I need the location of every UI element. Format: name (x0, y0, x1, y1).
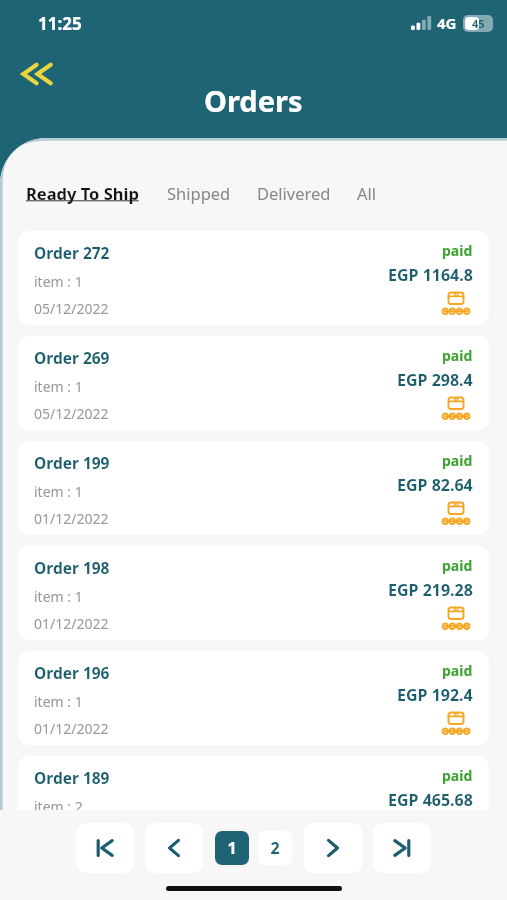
button[interactable]: Order 189 (18, 756, 489, 850)
staticText: Order 199 (34, 452, 110, 473)
button[interactable]: Previous page (145, 823, 203, 873)
button[interactable]: First page (76, 823, 134, 873)
button[interactable]: Delivered (257, 178, 331, 208)
staticText: Ready To Ship (26, 182, 139, 204)
staticText: 05/12/2022 (34, 299, 109, 318)
staticText: EGP 465.68 (388, 789, 473, 811)
staticText: EGP 192.4 (397, 684, 473, 706)
staticText: EGP 82.64 (397, 474, 473, 496)
button[interactable]: 2 (258, 831, 292, 865)
staticText: 01/12/2022 (34, 509, 109, 528)
staticText: 01/12/2022 (34, 719, 109, 738)
button[interactable]: Back (14, 54, 68, 94)
button[interactable]: Order 198 (18, 546, 489, 640)
staticText: 1 (227, 837, 237, 859)
staticText: EGP 1164.8 (388, 264, 473, 286)
staticText: Delivered (257, 182, 331, 204)
staticText: 11:25 (38, 12, 82, 35)
button[interactable]: Shipped (167, 178, 231, 208)
button[interactable]: Last page (373, 823, 431, 873)
staticText: 45 (472, 16, 485, 31)
staticText: Order 198 (34, 557, 110, 578)
button[interactable]: Order 199 (18, 441, 489, 535)
staticText: item : 1 (34, 377, 83, 396)
button[interactable]: Order 196 (18, 651, 489, 745)
staticText: Order 269 (34, 347, 110, 368)
staticText: item : 1 (34, 587, 83, 606)
staticText: 01/12/2022 (34, 614, 109, 633)
staticText: Order 272 (34, 242, 110, 263)
button[interactable]: Ready To Ship (26, 178, 139, 208)
button[interactable]: Order 272 (18, 231, 489, 325)
staticText: item : 1 (34, 272, 83, 291)
staticText: item : 1 (34, 482, 83, 501)
staticText: Orders (204, 81, 303, 120)
staticText: Order 189 (34, 767, 110, 788)
staticText: paid (442, 766, 473, 785)
staticText: 05/12/2022 (34, 404, 109, 423)
staticText: item : 2 (34, 797, 83, 816)
staticText: Shipped (167, 182, 231, 204)
staticText: All (357, 182, 377, 204)
staticText: Order 196 (34, 662, 110, 683)
button[interactable]: 1 (215, 831, 249, 865)
staticText: 2 (270, 837, 280, 859)
staticText: 01/12/2022 (34, 824, 109, 843)
staticText: paid (442, 556, 473, 575)
button[interactable]: Order 269 (18, 336, 489, 430)
staticText: EGP 219.28 (388, 579, 473, 601)
staticText: paid (442, 451, 473, 470)
staticText: paid (442, 241, 473, 260)
button[interactable]: All (357, 178, 377, 208)
staticText: paid (442, 661, 473, 680)
staticText: EGP 298.4 (397, 369, 473, 391)
staticText: 4G (437, 13, 457, 33)
button[interactable]: Next page (304, 823, 362, 873)
staticText: item : 1 (34, 692, 83, 711)
staticText: paid (442, 346, 473, 365)
